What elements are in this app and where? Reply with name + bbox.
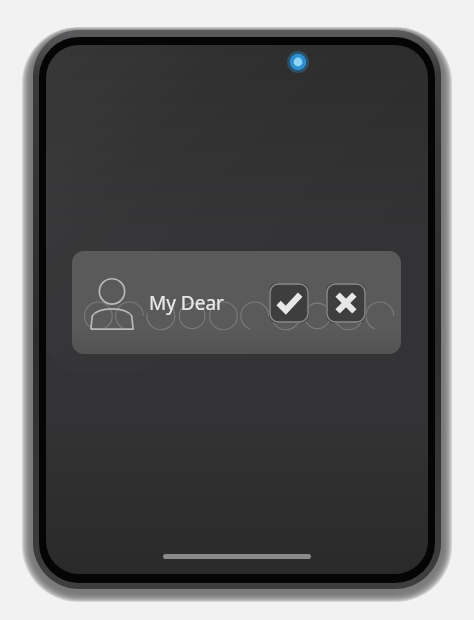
staticText: My Dear xyxy=(149,290,224,316)
button[interactable]: Contact avatar xyxy=(72,251,401,354)
other: Contact avatar xyxy=(89,274,135,332)
button[interactable]: Accept xyxy=(269,283,309,323)
button[interactable]: Decline xyxy=(326,283,366,323)
